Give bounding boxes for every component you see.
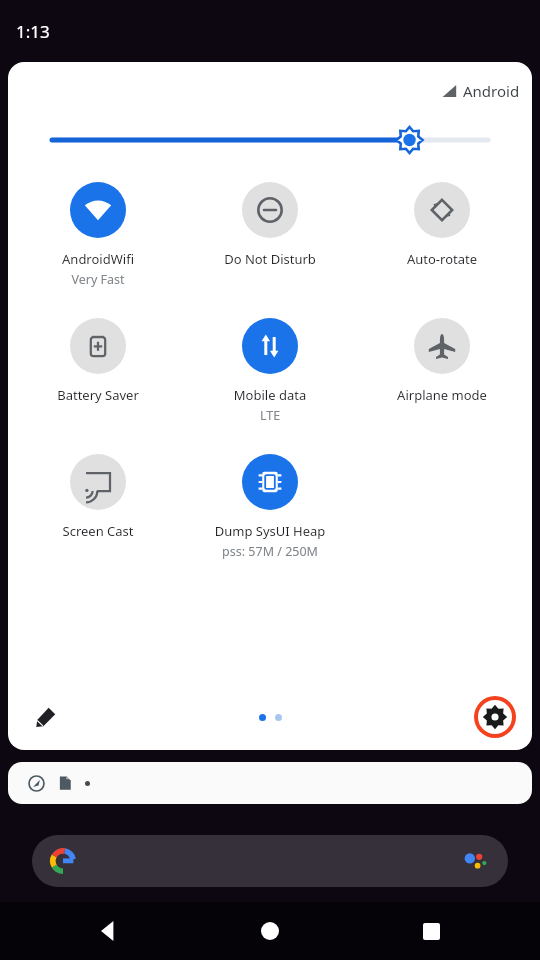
staticText: pss: 57M / 250M [184, 543, 356, 560]
button[interactable]: Dump SysUI Heap [184, 450, 356, 564]
staticText: Screen Cast [12, 522, 184, 540]
button[interactable]: Home [246, 907, 294, 955]
button[interactable]: AndroidWifi [12, 178, 184, 292]
staticText: Very Fast [12, 271, 184, 288]
button[interactable]: Do Not Disturb [184, 178, 356, 272]
staticText: Do Not Disturb [184, 250, 356, 268]
staticText: 1:13 [16, 20, 50, 43]
staticText: Android [463, 81, 520, 101]
button[interactable]: Airplane mode [356, 314, 528, 408]
button[interactable]: Edit tiles [26, 697, 66, 737]
button[interactable]: Recents [407, 907, 455, 955]
staticText: AndroidWifi [12, 250, 184, 268]
staticText: Dump SysUI Heap [184, 522, 356, 540]
button[interactable]: Screen Cast [12, 450, 184, 544]
button[interactable]: Settings [474, 696, 516, 738]
button[interactable] [52, 120, 488, 160]
staticText: LTE [184, 407, 356, 424]
staticText: Auto-rotate [356, 250, 528, 268]
staticText: Mobile data [184, 386, 356, 404]
staticText: Battery Saver [12, 386, 184, 404]
button[interactable]: Back [85, 907, 133, 955]
button[interactable]: Mobile data [184, 314, 356, 428]
button[interactable]: Auto-rotate [356, 178, 528, 272]
staticText: Airplane mode [356, 386, 528, 404]
button[interactable] [8, 762, 532, 804]
button[interactable]: Battery Saver [12, 314, 184, 408]
button[interactable] [32, 835, 508, 887]
